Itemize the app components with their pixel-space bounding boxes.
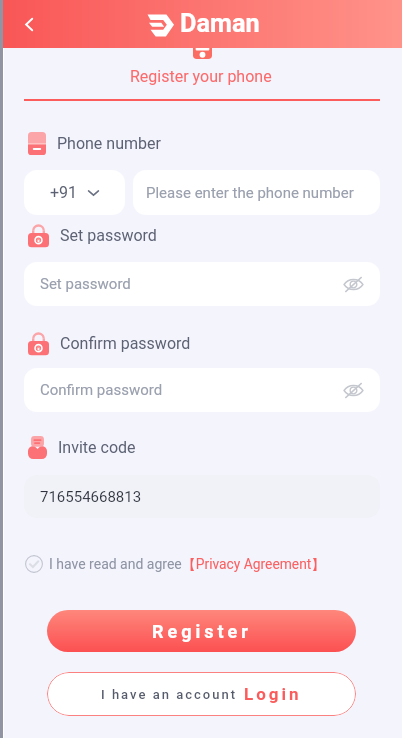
staticText: Daman xyxy=(180,9,260,39)
staticText: Invite code xyxy=(58,438,136,457)
staticText: Register xyxy=(152,621,252,642)
staticText: I have an account xyxy=(101,687,237,702)
button[interactable]: +91 xyxy=(24,170,125,215)
button[interactable]: Register xyxy=(47,610,356,652)
button[interactable]: Please enter the phone number xyxy=(133,170,380,215)
staticText: I have read and agree xyxy=(49,556,182,572)
button[interactable]: Register your phone xyxy=(0,64,402,88)
staticText: +91 xyxy=(50,183,78,202)
button[interactable]: 716554668813 xyxy=(24,475,380,518)
button[interactable]: Toggle password visibility xyxy=(340,271,366,297)
button[interactable]: I have read and agree xyxy=(25,554,326,574)
staticText: Confirm password xyxy=(60,334,191,353)
staticText: 【Privacy Agreement】 xyxy=(182,556,326,573)
staticText: 716554668813 xyxy=(40,488,142,506)
staticText: Register your phone xyxy=(130,67,272,86)
button[interactable]: Back xyxy=(10,5,48,43)
staticText: Set password xyxy=(40,275,131,293)
staticText: Phone number xyxy=(57,134,161,153)
button[interactable]: Toggle password visibility xyxy=(340,377,366,403)
button[interactable]: Set password xyxy=(24,262,380,306)
staticText: Confirm password xyxy=(40,381,163,399)
staticText: Login xyxy=(244,684,302,704)
staticText: Please enter the phone number xyxy=(146,184,354,202)
button[interactable]: I have an account xyxy=(47,672,356,716)
button[interactable]: Confirm password xyxy=(24,368,380,412)
staticText: Set password xyxy=(60,226,157,245)
